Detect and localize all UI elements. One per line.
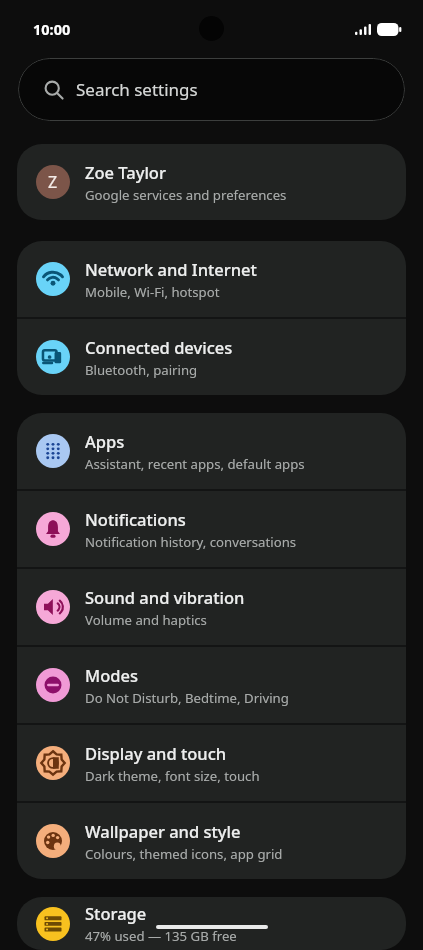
staticText: Mobile, Wi-Fi, hotspot: [85, 283, 220, 301]
staticText: Search settings: [76, 78, 198, 101]
button[interactable]: Z: [17, 144, 406, 220]
staticText: Volume and haptics: [85, 611, 207, 629]
staticText: Wallpaper and style: [85, 820, 241, 842]
staticText: Assistant, recent apps, default apps: [85, 455, 305, 473]
staticText: Apps: [85, 430, 125, 452]
staticText: Display and touch: [85, 742, 227, 764]
button[interactable]: Storage: [17, 897, 406, 950]
staticText: Storage: [85, 902, 147, 924]
staticText: Dark theme, font size, touch: [85, 767, 260, 785]
staticText: Google services and preferences: [85, 186, 287, 204]
button[interactable]: Display and touch: [17, 725, 406, 801]
staticText: Bluetooth, pairing: [85, 361, 198, 379]
button[interactable]: Search: [18, 58, 405, 121]
button[interactable]: Modes: [17, 647, 406, 723]
staticText: Sound and vibration: [85, 586, 245, 608]
staticText: Colours, themed icons, app grid: [85, 845, 283, 863]
button[interactable]: Sound and vibration: [17, 569, 406, 645]
button[interactable]: Apps: [17, 413, 406, 489]
staticText: Notifications: [85, 508, 186, 530]
staticText: Zoe Taylor: [85, 161, 166, 183]
staticText: 47% used — 135 GB free: [85, 927, 237, 945]
staticText: Connected devices: [85, 336, 233, 358]
button[interactable]: Network and Internet: [17, 241, 406, 317]
button[interactable]: Notifications: [17, 491, 406, 567]
other: Search: [44, 80, 64, 100]
button[interactable]: Wallpaper and style: [17, 803, 406, 879]
staticText: Z: [48, 171, 58, 193]
staticText: Do Not Disturb, Bedtime, Driving: [85, 689, 289, 707]
staticText: Notification history, conversations: [85, 533, 297, 551]
staticText: 10:00: [33, 19, 71, 39]
staticText: Network and Internet: [85, 258, 257, 280]
button[interactable]: Connected devices: [17, 319, 406, 395]
staticText: Modes: [85, 664, 138, 686]
